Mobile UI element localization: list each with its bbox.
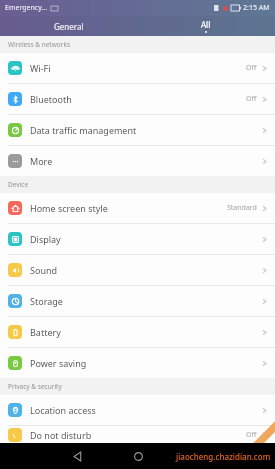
staticText: Home screen style (30, 202, 108, 214)
staticText: All (201, 19, 211, 30)
button[interactable]: Do not disturb (0, 426, 275, 443)
button[interactable]: Back (58, 443, 98, 469)
button[interactable]: Home screen style (0, 193, 275, 223)
button[interactable]: Location access (0, 395, 275, 425)
staticText: 2:15 AM (243, 3, 270, 13)
button[interactable]: Power saving (0, 348, 275, 378)
button[interactable]: Battery (0, 317, 275, 347)
staticText: Display (30, 233, 61, 245)
staticText: Bluetooth (30, 93, 72, 105)
staticText: Storage (30, 295, 63, 307)
staticText: Off (246, 94, 257, 104)
button[interactable]: More (0, 146, 275, 176)
staticText: Standard (227, 203, 257, 213)
button[interactable]: General (0, 16, 137, 36)
staticText: General (54, 21, 84, 32)
staticText: Emergency... (5, 3, 48, 13)
staticText: Data traffic management (30, 124, 137, 136)
button[interactable]: Wi-Fi (0, 53, 275, 83)
button[interactable]: Sound (0, 255, 275, 285)
staticText: Privacy & security (8, 382, 62, 391)
button[interactable]: Home (118, 443, 158, 469)
staticText: More (30, 155, 53, 167)
staticText: Do not disturb (30, 429, 92, 441)
button[interactable]: Storage (0, 286, 275, 316)
staticText: Location access (30, 404, 96, 416)
button[interactable]: Recents (178, 443, 218, 469)
button[interactable]: Display (0, 224, 275, 254)
staticText: Wireless & networks (8, 40, 70, 49)
staticText: Sound (30, 264, 58, 276)
staticText: Battery (30, 326, 61, 338)
staticText: Power saving (30, 357, 87, 369)
button[interactable]: All (137, 16, 275, 36)
staticText: Off (246, 63, 257, 73)
button[interactable]: Bluetooth (0, 84, 275, 114)
staticText: Off (246, 430, 257, 440)
button[interactable]: Data traffic management (0, 115, 275, 145)
staticText: Device (8, 180, 29, 189)
staticText: jiaocheng.chazidian.com (176, 451, 271, 462)
staticText: Wi-Fi (30, 62, 51, 74)
